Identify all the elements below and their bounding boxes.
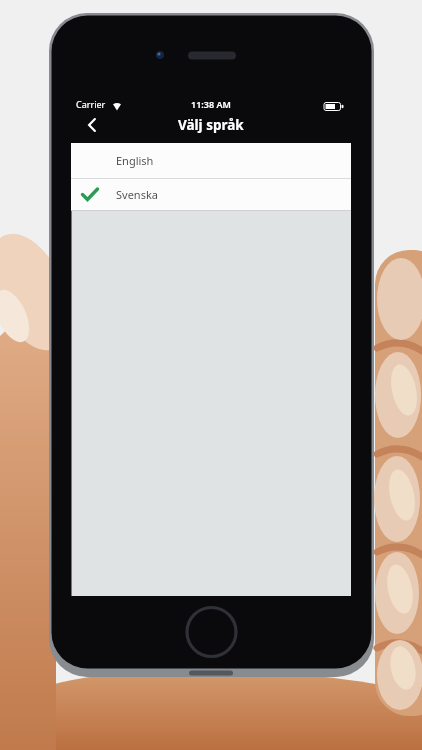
staticText: English bbox=[116, 153, 154, 168]
staticText: 11:38 AM bbox=[191, 98, 231, 110]
button[interactable]: Svenska bbox=[71, 179, 351, 210]
button[interactable] bbox=[187, 607, 237, 657]
staticText: Carrier bbox=[76, 98, 106, 110]
staticText: Svenska bbox=[116, 187, 158, 202]
button[interactable]: English bbox=[71, 143, 351, 178]
button[interactable] bbox=[78, 111, 106, 139]
staticText: Välj språk bbox=[178, 116, 244, 134]
